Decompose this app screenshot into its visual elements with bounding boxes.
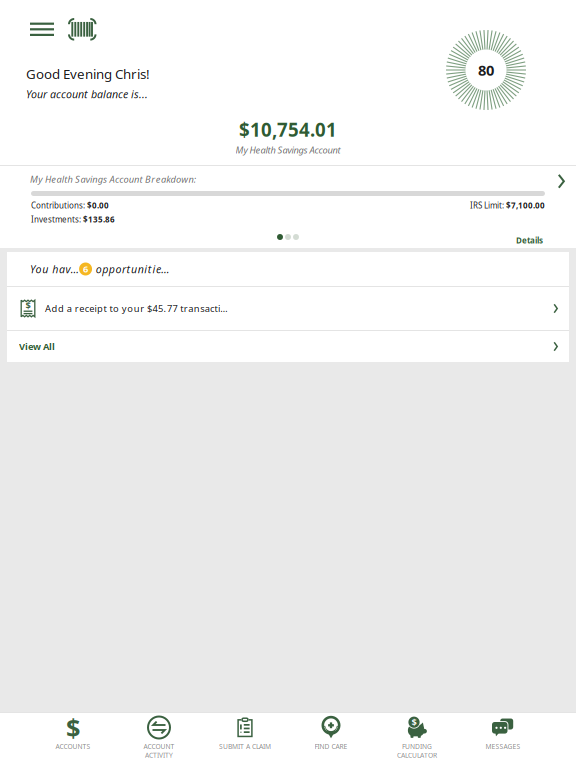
staticText: 80 — [478, 60, 494, 80]
staticText: $135.86 — [83, 214, 115, 225]
staticText: Details — [516, 235, 543, 246]
staticText: IRS Limit: — [470, 200, 506, 211]
button[interactable]: ACCOUNT — [116, 712, 202, 768]
staticText: $ — [66, 711, 80, 744]
staticText: $ — [411, 716, 416, 728]
staticText: 6 — [83, 263, 88, 275]
staticText: Contributions: — [31, 200, 87, 211]
button[interactable]: View All — [7, 331, 569, 362]
button[interactable]: $ — [7, 287, 569, 330]
staticText: My Health Savings Account — [235, 144, 340, 156]
button[interactable]: Scan ID card — [68, 18, 96, 41]
staticText: CALCULATOR — [397, 751, 437, 760]
staticText: Your account balance is... — [26, 87, 148, 101]
staticText: MESSAGES — [485, 742, 520, 751]
staticText: Add a receipt to your $45.77 transaction — [45, 302, 232, 315]
staticText: My Health Savings Account Breakdown: — [30, 173, 196, 185]
button[interactable]: SUBMIT A CLAIM — [202, 712, 288, 768]
button[interactable]: Account details — [548, 164, 575, 198]
staticText: FUNDING — [402, 742, 432, 751]
staticText: FIND CARE — [314, 742, 347, 751]
button[interactable]: Details — [502, 228, 557, 253]
staticText: ACCOUNTS — [55, 742, 90, 751]
staticText: You have — [30, 262, 79, 276]
button[interactable]: MESSAGES — [460, 712, 546, 768]
staticText: $ — [25, 299, 30, 312]
button[interactable]: $ — [374, 712, 460, 768]
button[interactable]: Menu — [30, 18, 54, 40]
staticText: ACCOUNT — [143, 742, 174, 751]
staticText: $0.00 — [87, 200, 109, 211]
button[interactable]: $ — [30, 712, 116, 768]
staticText: $7,100.00 — [506, 200, 545, 211]
staticText: ACTIVITY — [145, 751, 173, 760]
staticText: View All — [19, 340, 55, 353]
button[interactable]: FIND CARE — [288, 712, 374, 768]
staticText: SUBMIT A CLAIM — [219, 742, 271, 751]
staticText: opportunities! — [92, 262, 170, 276]
staticText: Investments: — [31, 214, 83, 225]
staticText: Good Evening Chris! — [26, 65, 150, 83]
staticText: $10,754.01 — [239, 117, 337, 142]
